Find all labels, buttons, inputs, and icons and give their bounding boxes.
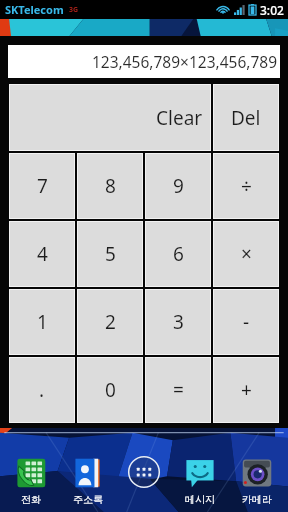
staticText: × <box>241 241 252 267</box>
staticText: 8 <box>105 173 116 199</box>
button[interactable]: 0 <box>78 358 142 422</box>
button[interactable]: 2 <box>78 290 142 354</box>
staticText: 주소록 <box>73 493 103 506</box>
staticText: SKTelecom <box>5 2 64 17</box>
staticText: . <box>39 377 45 403</box>
button[interactable]: Messages <box>173 456 227 506</box>
staticText: 전화 <box>21 493 41 506</box>
staticText: 9 <box>173 173 184 199</box>
button[interactable]: Phone <box>4 456 58 506</box>
button[interactable]: 9 <box>146 154 210 218</box>
button[interactable]: 123,456,789×123,456,789 <box>8 45 280 78</box>
button[interactable]: 3 <box>146 290 210 354</box>
button[interactable]: . <box>10 358 74 422</box>
button[interactable]: Camera <box>230 456 284 506</box>
button[interactable]: 1 <box>10 290 74 354</box>
button[interactable]: 6 <box>146 222 210 286</box>
staticText: 카메라 <box>242 493 272 506</box>
button[interactable]: Clear <box>10 85 210 150</box>
staticText: 3:02 <box>260 2 284 18</box>
staticText: 7 <box>37 173 48 199</box>
staticText: = <box>173 377 184 403</box>
staticText: - <box>243 309 250 335</box>
staticText: Clear <box>156 105 203 131</box>
button[interactable]: Contacts <box>61 456 115 506</box>
button[interactable]: + <box>214 358 278 422</box>
button[interactable]: - <box>214 290 278 354</box>
staticText: 6 <box>173 241 184 267</box>
staticText: 0 <box>105 377 116 403</box>
button[interactable]: 8 <box>78 154 142 218</box>
staticText: 3 <box>173 309 184 335</box>
button[interactable]: = <box>146 358 210 422</box>
staticText: 4 <box>37 241 48 267</box>
staticText: Del <box>231 105 261 131</box>
staticText: 123,456,789×123,456,789 <box>91 51 277 72</box>
button[interactable]: 4 <box>10 222 74 286</box>
button[interactable]: Del <box>214 85 278 150</box>
staticText: ÷ <box>241 173 252 199</box>
staticText: 3G <box>69 5 79 15</box>
button[interactable]: 5 <box>78 222 142 286</box>
staticText: 1 <box>37 309 48 335</box>
button[interactable]: Apps <box>117 455 171 506</box>
staticText: 메시지 <box>185 493 215 506</box>
staticText: 2 <box>105 309 116 335</box>
staticText: + <box>241 377 252 403</box>
staticText: 5 <box>105 241 116 267</box>
button[interactable]: 7 <box>10 154 74 218</box>
button[interactable]: × <box>214 222 278 286</box>
button[interactable]: ÷ <box>214 154 278 218</box>
